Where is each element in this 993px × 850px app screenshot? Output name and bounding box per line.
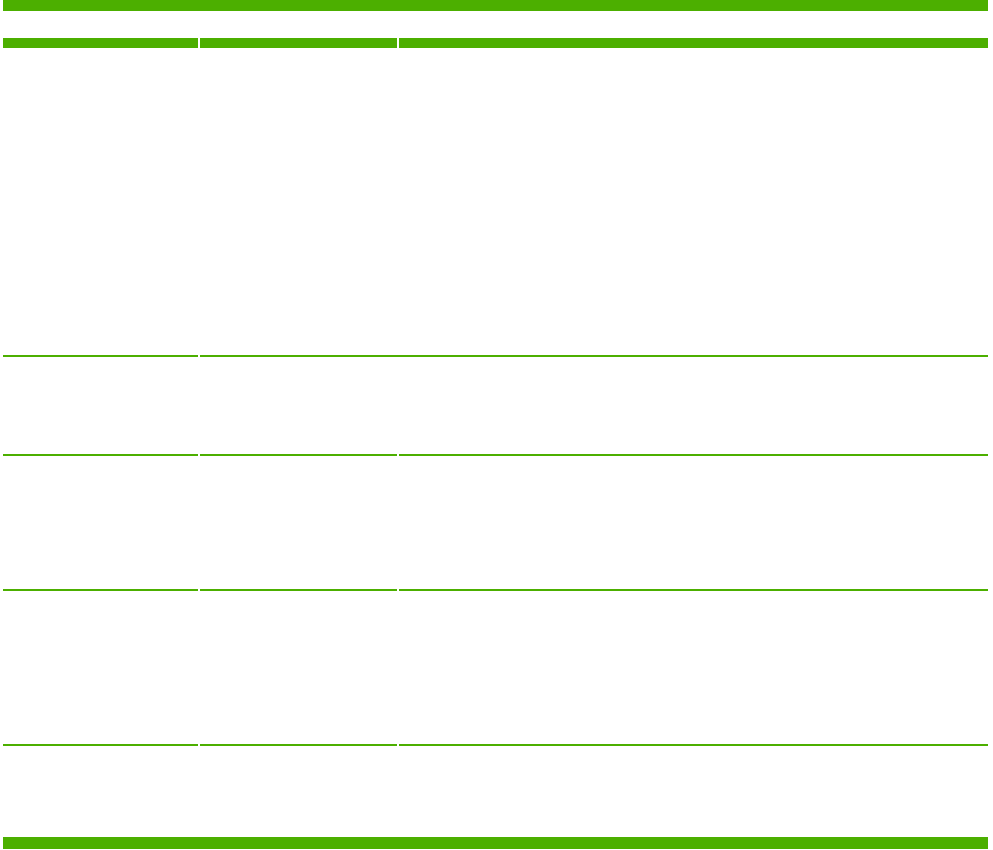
button[interactable]: Row separator 1 [3,355,988,357]
button[interactable]: Row separator 2 [3,454,988,456]
button[interactable]: Header row border [3,38,988,48]
button[interactable]: Row separator 3 [3,589,988,591]
button[interactable]: Row separator 4 [3,744,988,746]
